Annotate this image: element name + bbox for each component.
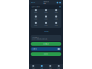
button[interactable]: Aaa — [31, 9, 41, 15]
button[interactable]: Aaa — [41, 22, 51, 28]
button[interactable]: Continue — [31, 42, 61, 46]
staticText: Aaa — [55, 18, 58, 20]
button[interactable]: Tab — [29, 65, 37, 69]
button[interactable]: Done — [31, 52, 61, 56]
staticText: Quick actions — [31, 6, 40, 8]
button[interactable]: Aaa — [51, 9, 61, 15]
staticText: Tab — [32, 67, 35, 69]
button[interactable]: Aaa — [31, 15, 41, 21]
button[interactable]: Aaa — [41, 9, 51, 15]
staticText: Done — [44, 53, 48, 55]
button[interactable]: Tab — [46, 65, 54, 69]
staticText: Aaa — [34, 24, 37, 26]
staticText: Aaa — [34, 18, 37, 20]
staticText: Continue — [43, 43, 49, 45]
button[interactable]: Notify me — [31, 47, 61, 51]
button[interactable]: See all — [44, 31, 48, 33]
button[interactable]: Aaa — [41, 15, 51, 21]
button[interactable]: More — [59, 2, 61, 3]
staticText: Everything is up to date. — [32, 38, 47, 40]
staticText: Notify me — [32, 48, 37, 50]
button[interactable]: Tab — [54, 65, 63, 69]
staticText: Aaa — [44, 24, 47, 26]
button[interactable]: Back — [31, 2, 35, 4]
staticText: Back — [31, 2, 35, 3]
staticText: Tab — [40, 67, 43, 69]
staticText: Tab — [57, 67, 60, 69]
staticText: Aaa — [44, 12, 47, 13]
staticText: See all — [44, 31, 48, 32]
button[interactable]: Aaa — [51, 22, 61, 28]
staticText: Overview — [43, 1, 48, 4]
button[interactable]: Tab — [37, 65, 46, 69]
staticText: Tab — [49, 67, 52, 69]
staticText: Aaa — [55, 24, 58, 26]
staticText: Aaa — [55, 12, 58, 13]
staticText: Aaa — [34, 12, 37, 13]
button[interactable]: Aaa — [31, 22, 41, 28]
button[interactable]: Aaa — [51, 15, 61, 21]
staticText: Aaa — [44, 18, 47, 20]
staticText: Summary — [32, 36, 39, 38]
